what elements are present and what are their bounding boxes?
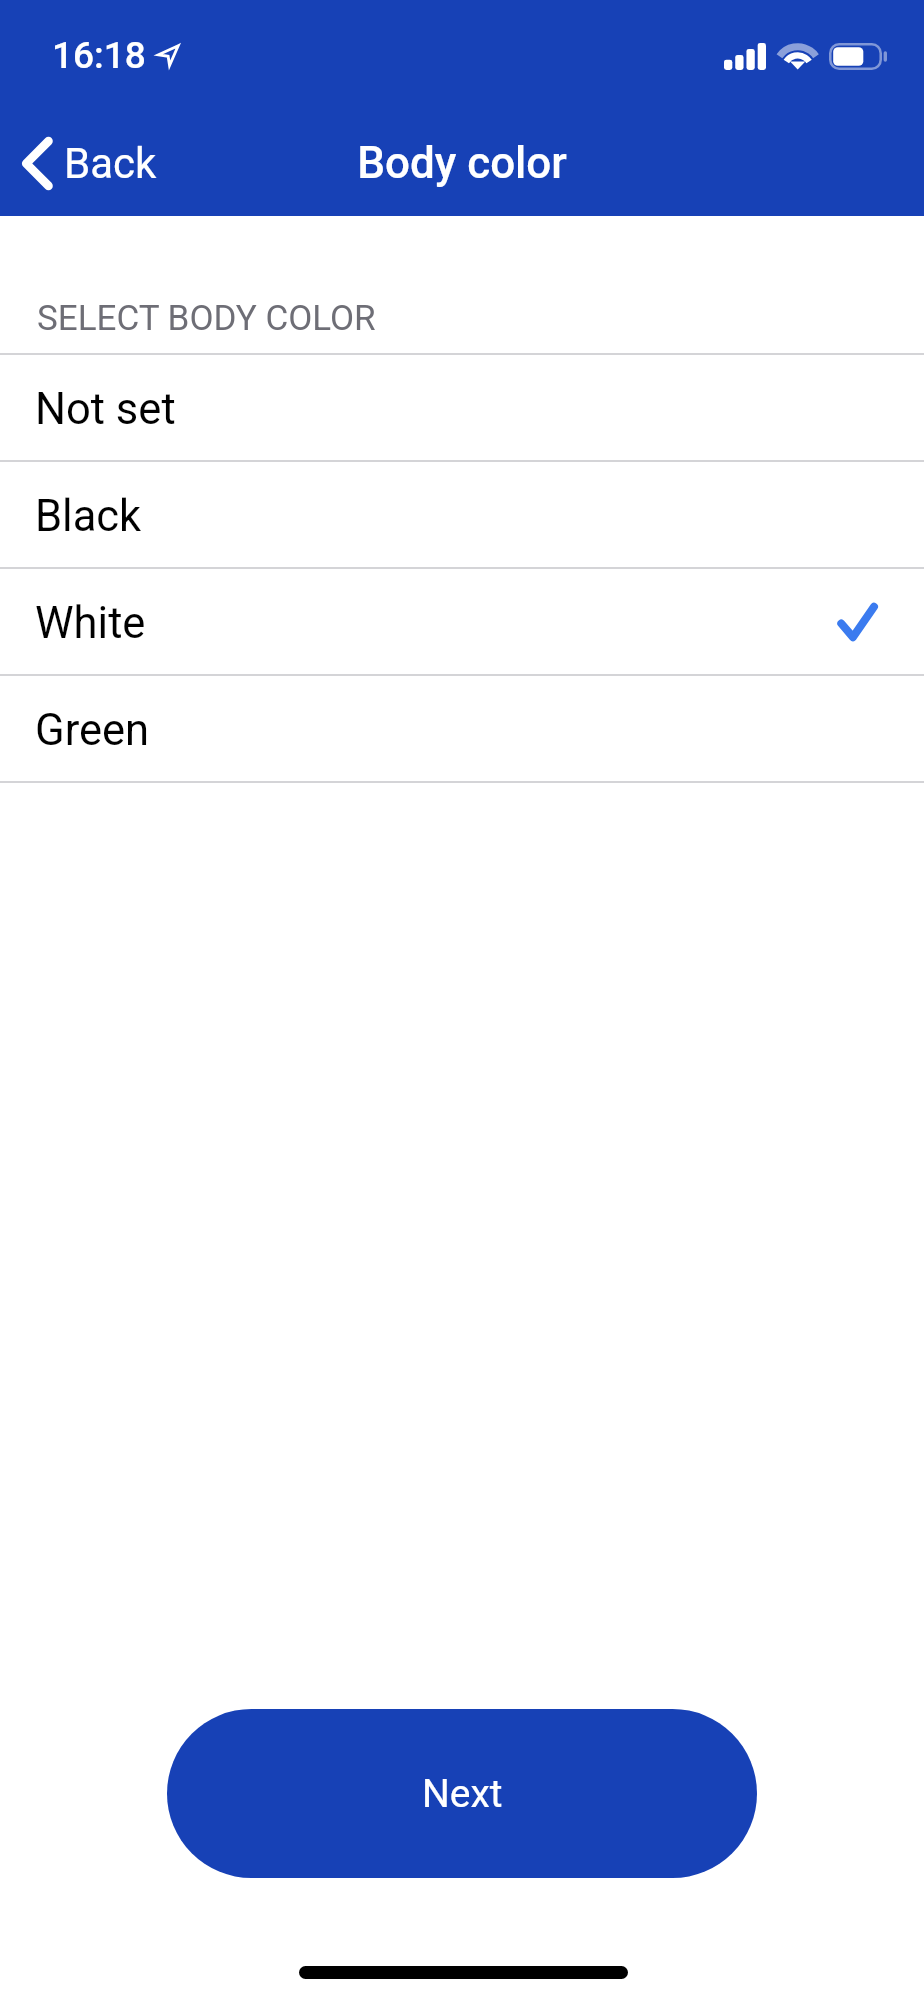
button[interactable]: Green <box>0 676 924 781</box>
staticText: Back <box>64 139 157 188</box>
staticText: SELECT BODY COLOR <box>37 298 376 339</box>
button[interactable]: Not set <box>0 355 924 460</box>
staticText: Green <box>35 705 150 756</box>
button[interactable]: Black <box>0 462 924 567</box>
button[interactable]: White <box>0 569 924 674</box>
staticText: 16:18 <box>52 34 146 77</box>
staticText: White <box>35 598 146 649</box>
button[interactable]: Back <box>21 136 157 191</box>
staticText: Next <box>422 1771 503 1817</box>
button[interactable]: Next <box>167 1709 757 1878</box>
staticText: Not set <box>35 384 176 435</box>
staticText: Black <box>35 491 142 542</box>
staticText: Body color <box>357 137 567 189</box>
